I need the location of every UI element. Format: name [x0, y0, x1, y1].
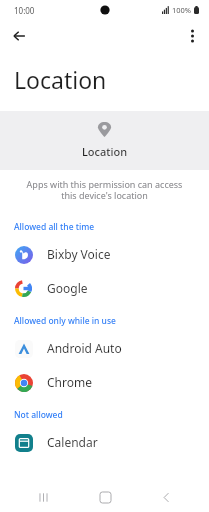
- staticText: 10:00: [14, 5, 35, 16]
- staticText: Allowed only while in use: [14, 315, 116, 327]
- staticText: Bixby Voice: [47, 246, 111, 262]
- button[interactable]: More options: [179, 23, 205, 49]
- button[interactable]: Calendar: [0, 425, 209, 459]
- staticText: Chrome: [47, 374, 92, 390]
- button[interactable]: Recent apps: [25, 482, 61, 512]
- staticText: Not allowed: [14, 409, 63, 421]
- button[interactable]: Home: [87, 482, 123, 512]
- staticText: Location: [14, 64, 107, 95]
- button[interactable]: Bixby Voice: [0, 237, 209, 271]
- staticText: Calendar: [47, 434, 98, 450]
- staticText: Allowed all the time: [14, 221, 95, 233]
- staticText: Location: [82, 144, 128, 159]
- staticText: Android Auto: [47, 340, 122, 356]
- button[interactable]: Chrome: [0, 365, 209, 399]
- button[interactable]: Back: [148, 482, 184, 512]
- staticText: Google: [47, 280, 88, 296]
- button[interactable]: Back: [6, 23, 32, 49]
- staticText: 100%: [172, 5, 192, 15]
- staticText: Apps with this permission can access thi…: [22, 178, 187, 202]
- button[interactable]: Google: [0, 271, 209, 305]
- button[interactable]: Android Auto: [0, 331, 209, 365]
